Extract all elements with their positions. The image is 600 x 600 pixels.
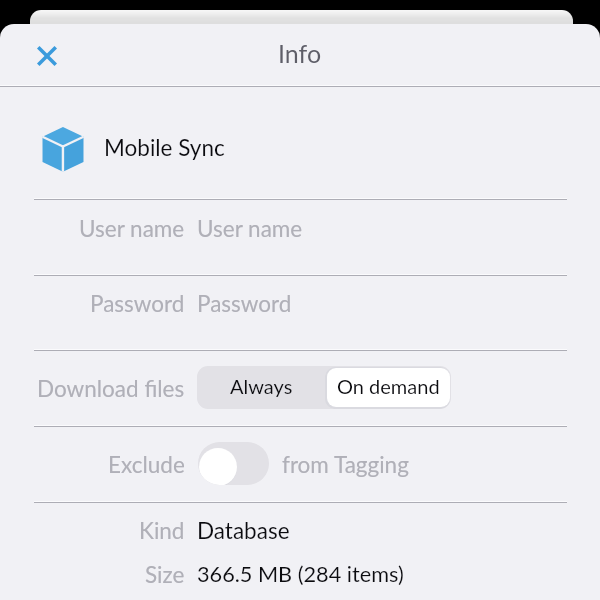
staticText: Kind <box>139 517 185 544</box>
button[interactable]: Kind <box>0 513 600 547</box>
staticText: Always <box>230 374 293 398</box>
button[interactable]: Close <box>27 36 67 76</box>
button[interactable]: User name <box>0 211 600 245</box>
button[interactable]: Exclude from Tagging <box>198 442 269 485</box>
staticText: User name <box>197 215 303 242</box>
staticText: Size <box>145 561 185 588</box>
staticText: Password <box>197 290 292 317</box>
staticText: Password <box>90 290 185 317</box>
staticText: 366.5 MB (284 items) <box>197 561 404 587</box>
staticText: from Tagging <box>282 451 409 478</box>
button[interactable]: Password <box>0 286 600 320</box>
staticText: On demand <box>337 374 440 398</box>
staticText: Download files <box>37 375 185 402</box>
staticText: Database <box>197 517 290 544</box>
button[interactable]: On demand <box>327 368 450 407</box>
staticText: Mobile Sync <box>104 134 225 161</box>
button[interactable]: Size <box>0 557 600 591</box>
staticText: User name <box>79 215 185 242</box>
staticText: Exclude <box>108 451 185 478</box>
staticText: Info <box>278 38 322 68</box>
button[interactable]: Always <box>197 366 326 409</box>
